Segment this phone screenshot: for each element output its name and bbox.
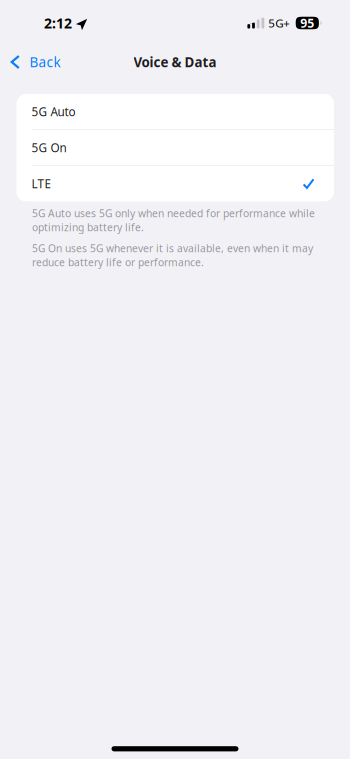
- staticText: 5G Auto: [31, 104, 75, 120]
- staticText: LTE: [31, 176, 51, 192]
- button[interactable]: Back: [0, 45, 72, 79]
- staticText: 95: [300, 15, 314, 31]
- staticText: 5G On uses 5G whenever it is available, …: [32, 241, 313, 269]
- staticText: Back: [29, 53, 60, 71]
- button[interactable]: LTE: [16, 166, 334, 201]
- staticText: 5G+: [268, 15, 290, 31]
- button[interactable]: 5G Auto: [16, 94, 334, 129]
- staticText: 2:12: [44, 13, 72, 33]
- staticText: 5G On: [31, 140, 66, 156]
- staticText: Voice & Data: [133, 53, 216, 71]
- button[interactable]: 5G On: [16, 130, 334, 165]
- staticText: 5G Auto uses 5G only when needed for per…: [32, 206, 315, 234]
